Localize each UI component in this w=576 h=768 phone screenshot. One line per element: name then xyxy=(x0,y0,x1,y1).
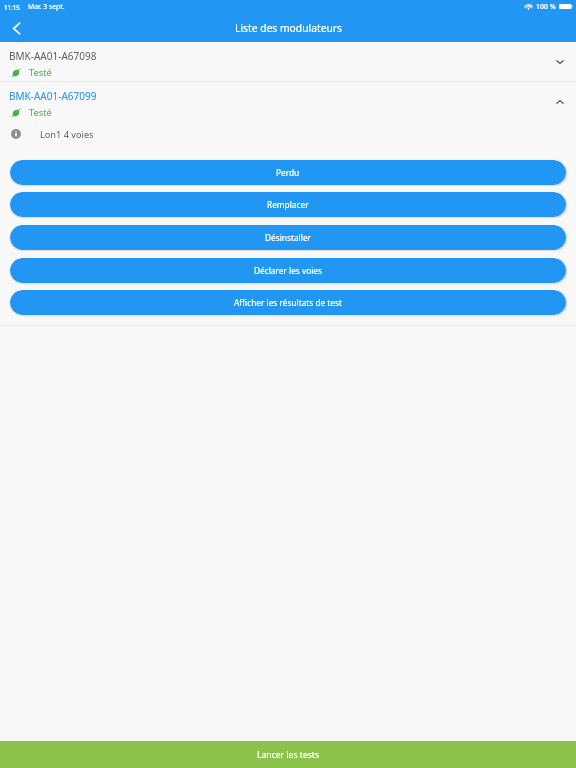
staticText: Remplacer xyxy=(267,199,309,210)
button[interactable]: Back xyxy=(5,17,27,39)
button[interactable]: BMK-AA01-A67098 xyxy=(0,42,576,81)
staticText: Liste des modulateurs xyxy=(235,21,342,35)
staticText: Mar. 3 sept. xyxy=(28,2,65,11)
staticText: Déclarer les voies xyxy=(254,265,323,276)
button[interactable]: Désinstaller xyxy=(10,225,566,250)
staticText: BMK-AA01-A67099 xyxy=(9,89,97,103)
staticText: Lancer les tests xyxy=(257,749,320,761)
button[interactable]: Lon1 4 voies xyxy=(11,121,576,147)
button[interactable]: Lancer les tests xyxy=(0,741,576,768)
staticText: 11:15 xyxy=(4,3,20,11)
button[interactable]: Afficher les résultats de test xyxy=(10,290,566,315)
staticText: BMK-AA01-A67098 xyxy=(9,49,97,63)
staticText: 100 % xyxy=(536,2,556,12)
button[interactable]: Déclarer les voies xyxy=(10,258,566,283)
button[interactable]: Perdu xyxy=(10,160,566,185)
staticText: Lon1 4 voies xyxy=(40,128,94,141)
staticText: Testé xyxy=(29,66,52,79)
staticText: Perdu xyxy=(276,167,300,178)
staticText: Désinstaller xyxy=(265,232,311,243)
button[interactable]: BMK-AA01-A67099 xyxy=(0,82,576,121)
staticText: Testé xyxy=(29,106,52,119)
staticText: Afficher les résultats de test xyxy=(234,297,343,308)
button[interactable]: Remplacer xyxy=(10,192,566,217)
